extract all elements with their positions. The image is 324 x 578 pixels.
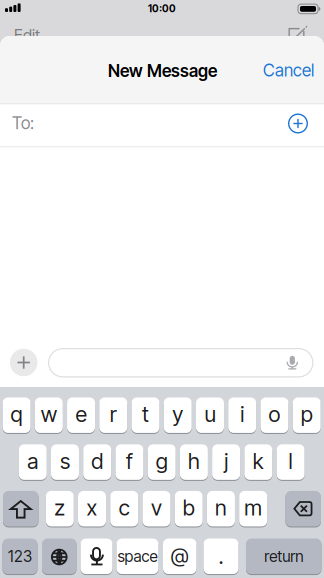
button[interactable]: h <box>180 444 208 480</box>
button[interactable]: t <box>131 397 159 433</box>
button[interactable]: c <box>110 490 138 527</box>
button[interactable]: Apps <box>10 349 37 376</box>
staticText: h <box>188 448 200 474</box>
staticText: x <box>86 495 97 521</box>
button[interactable]: q <box>3 397 31 433</box>
button[interactable]: e <box>67 397 95 433</box>
button[interactable]: Add Contact <box>289 114 307 133</box>
button[interactable]: g <box>148 444 176 480</box>
staticText: i <box>240 401 244 427</box>
button[interactable]: z <box>46 490 74 527</box>
button[interactable]: u <box>196 397 224 433</box>
staticText: New Message <box>108 60 217 81</box>
staticText: n <box>215 495 227 521</box>
button[interactable]: @ <box>163 538 196 574</box>
staticText: Edit <box>14 26 40 45</box>
button[interactable]: k <box>244 444 272 480</box>
staticText: b <box>183 495 195 521</box>
button[interactable]: Cancel <box>263 60 314 81</box>
staticText: j <box>224 448 228 474</box>
staticText: w <box>41 401 57 427</box>
button[interactable]: . <box>203 538 238 574</box>
button[interactable]: w <box>35 397 63 433</box>
button[interactable]: i <box>228 397 256 433</box>
button[interactable]: return <box>246 538 321 574</box>
staticText: u <box>204 401 215 427</box>
button[interactable]: a <box>19 444 47 480</box>
button[interactable]: d <box>83 444 111 480</box>
staticText: f <box>126 448 133 474</box>
staticText: Cancel <box>263 60 314 81</box>
staticText: @ <box>171 543 189 567</box>
button[interactable]: Dictation <box>80 538 112 574</box>
staticText: m <box>244 495 262 521</box>
button[interactable]: b <box>175 490 203 527</box>
button[interactable]: l <box>277 444 305 480</box>
staticText: y <box>172 401 183 427</box>
button[interactable]: v <box>142 490 170 527</box>
staticText: v <box>151 495 162 521</box>
staticText: a <box>27 448 38 474</box>
button[interactable]: space <box>116 538 158 574</box>
button[interactable]: Delete <box>285 490 321 527</box>
staticText: 10:00 <box>148 3 176 15</box>
staticText: return <box>264 547 303 566</box>
button[interactable]: x <box>78 490 106 527</box>
button[interactable]: 123 <box>2 538 37 574</box>
staticText: c <box>119 495 130 521</box>
staticText: k <box>253 448 264 474</box>
staticText: o <box>268 401 280 427</box>
button[interactable]: m <box>239 490 267 527</box>
staticText: . <box>218 543 223 569</box>
staticText: s <box>60 448 70 474</box>
button[interactable]: f <box>115 444 143 480</box>
staticText: t <box>142 401 149 427</box>
staticText: space <box>117 547 157 566</box>
staticText: z <box>54 495 65 521</box>
button[interactable]: y <box>164 397 192 433</box>
button[interactable]: Message input <box>48 348 313 377</box>
button[interactable]: Next keyboard <box>42 538 76 574</box>
button[interactable]: s <box>51 444 79 480</box>
button[interactable]: Dictate <box>282 352 302 372</box>
staticText: 123 <box>8 547 32 566</box>
button[interactable]: j <box>212 444 240 480</box>
staticText: To: <box>12 113 34 133</box>
staticText: r <box>110 401 117 427</box>
staticText: q <box>11 401 23 427</box>
staticText: p <box>301 401 313 427</box>
button[interactable]: r <box>99 397 127 433</box>
button[interactable]: o <box>260 397 288 433</box>
staticText: e <box>76 401 87 427</box>
button[interactable]: p <box>293 397 321 433</box>
button[interactable]: n <box>207 490 235 527</box>
staticText: g <box>156 448 168 474</box>
staticText: d <box>91 448 103 474</box>
staticText: l <box>289 448 293 474</box>
button[interactable]: Shift <box>3 490 38 527</box>
